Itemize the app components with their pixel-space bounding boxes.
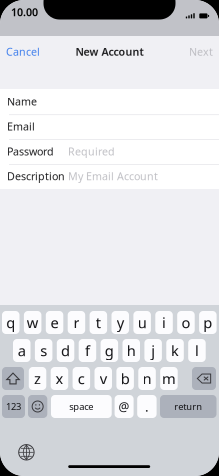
staticText: v xyxy=(100,369,107,388)
button[interactable]: 123 xyxy=(2,395,25,418)
button[interactable]: y xyxy=(111,311,129,334)
button[interactable]: Description xyxy=(0,164,219,189)
staticText: a xyxy=(18,341,26,360)
button[interactable]: u xyxy=(133,311,151,334)
staticText: space xyxy=(69,400,93,413)
button[interactable]: b xyxy=(116,367,134,390)
staticText: Description xyxy=(7,169,65,183)
button[interactable]: w xyxy=(24,311,41,334)
button[interactable]: Next xyxy=(0,45,213,57)
button[interactable]: g xyxy=(101,339,118,362)
staticText: Required xyxy=(68,144,115,158)
button[interactable]: space xyxy=(51,395,112,418)
button[interactable]: o xyxy=(177,311,195,334)
staticText: h xyxy=(127,341,136,360)
staticText: t xyxy=(96,313,101,332)
button[interactable]: i xyxy=(155,311,173,334)
button[interactable]: l xyxy=(188,339,206,362)
staticText: New Account xyxy=(75,44,143,59)
staticText: f xyxy=(85,341,90,360)
staticText: d xyxy=(61,341,70,360)
staticText: Name xyxy=(7,94,37,109)
button[interactable]: h xyxy=(122,339,140,362)
staticText: s xyxy=(40,341,47,360)
button[interactable]: r xyxy=(68,311,85,334)
button[interactable]: f xyxy=(79,339,96,362)
staticText: p xyxy=(203,313,212,332)
staticText: x xyxy=(55,369,63,388)
button[interactable]: p xyxy=(199,311,217,334)
staticText: . xyxy=(145,398,149,415)
button[interactable]: Switch keyboard xyxy=(19,445,34,460)
button[interactable]: c xyxy=(73,367,90,390)
button[interactable]: Delete xyxy=(192,367,216,390)
button[interactable]: v xyxy=(94,367,112,390)
button[interactable]: Emoji xyxy=(28,395,47,418)
staticText: Next xyxy=(189,44,213,59)
button[interactable]: z xyxy=(29,367,46,390)
button[interactable]: s xyxy=(35,339,52,362)
staticText: return xyxy=(174,400,202,413)
staticText: g xyxy=(105,341,114,360)
button[interactable]: @ xyxy=(115,395,134,418)
button[interactable]: n xyxy=(138,367,156,390)
staticText: z xyxy=(34,369,41,388)
staticText: My Email Account xyxy=(68,169,158,183)
button[interactable]: . xyxy=(137,395,157,418)
staticText: 123 xyxy=(6,400,21,413)
button[interactable]: a xyxy=(13,339,30,362)
button[interactable]: Password xyxy=(0,139,219,164)
staticText: w xyxy=(27,313,39,332)
staticText: j xyxy=(151,341,155,360)
staticText: l xyxy=(195,341,199,360)
button[interactable]: Name xyxy=(0,89,219,114)
staticText: Password xyxy=(7,144,54,158)
staticText: n xyxy=(143,369,152,388)
staticText: y xyxy=(117,313,124,332)
button[interactable]: k xyxy=(166,339,184,362)
staticText: b xyxy=(121,369,130,388)
staticText: u xyxy=(138,313,147,332)
button[interactable]: Cancel xyxy=(6,45,40,57)
staticText: e xyxy=(50,313,58,332)
button[interactable]: x xyxy=(51,367,68,390)
button[interactable]: t xyxy=(90,311,107,334)
staticText: @ xyxy=(119,398,130,414)
staticText: Cancel xyxy=(6,44,40,59)
staticText: c xyxy=(78,369,85,388)
button[interactable]: Shift xyxy=(2,367,24,390)
staticText: k xyxy=(171,341,179,360)
button[interactable]: j xyxy=(144,339,162,362)
staticText: o xyxy=(181,313,190,332)
button[interactable]: q xyxy=(2,311,19,334)
button[interactable]: d xyxy=(57,339,74,362)
button[interactable]: e xyxy=(46,311,63,334)
staticText: i xyxy=(162,313,166,332)
staticText: q xyxy=(6,313,15,332)
button[interactable]: return xyxy=(160,395,216,418)
staticText: Email xyxy=(7,119,35,133)
staticText: r xyxy=(73,313,79,332)
button[interactable]: Email xyxy=(0,114,219,139)
staticText: m xyxy=(162,369,176,388)
staticText: 10.00 xyxy=(11,5,38,19)
button[interactable]: m xyxy=(160,367,178,390)
